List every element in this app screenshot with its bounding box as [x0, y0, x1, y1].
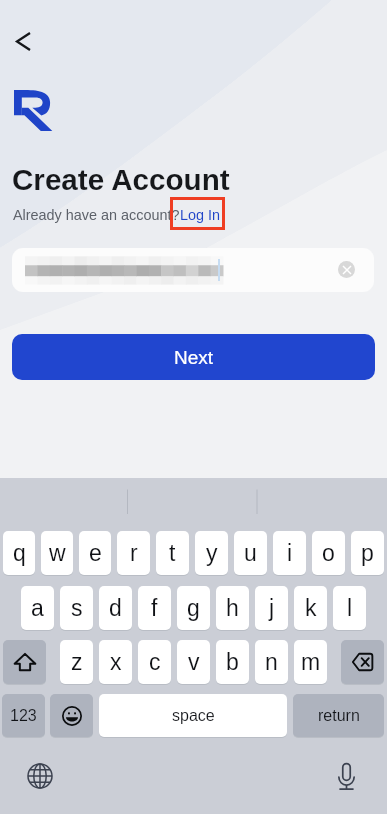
staticText: m	[301, 649, 321, 675]
button[interactable]: n	[255, 640, 288, 684]
button[interactable]: b	[216, 640, 249, 684]
staticText: Next	[174, 347, 214, 368]
staticText: l	[347, 595, 353, 621]
staticText: y	[206, 540, 218, 566]
staticText: x	[110, 649, 122, 675]
button[interactable]: x	[99, 640, 132, 684]
staticText: 123	[10, 707, 37, 725]
button[interactable]: o	[312, 531, 345, 575]
button[interactable]: Clear text	[12, 248, 374, 292]
staticText: Already have an account?	[13, 207, 180, 223]
staticText: s	[71, 595, 83, 621]
button[interactable]: q	[3, 531, 35, 575]
staticText: u	[244, 540, 257, 566]
button[interactable]: w	[41, 531, 73, 575]
staticText: w	[49, 540, 66, 566]
button[interactable]: Clear text	[338, 261, 355, 278]
button[interactable]: i	[273, 531, 306, 575]
staticText: c	[149, 649, 161, 675]
staticText: k	[305, 595, 317, 621]
button[interactable]: d	[99, 586, 132, 630]
staticText: j	[269, 595, 275, 621]
button[interactable]: Log In	[180, 207, 221, 223]
staticText: i	[287, 540, 293, 566]
button[interactable]: z	[60, 640, 93, 684]
staticText: o	[322, 540, 335, 566]
staticText: r	[130, 540, 138, 566]
button[interactable]: Return	[293, 694, 384, 737]
button[interactable]: Emoji	[50, 694, 93, 737]
button[interactable]: Numbers	[2, 694, 45, 737]
button[interactable]: space	[99, 694, 287, 737]
button[interactable]: y	[195, 531, 228, 575]
staticText: p	[361, 540, 374, 566]
button[interactable]: Next	[12, 334, 375, 380]
button[interactable]: Dictate	[329, 759, 363, 793]
button[interactable]: u	[234, 531, 267, 575]
button[interactable]: Change keyboard	[23, 759, 57, 793]
staticText: f	[151, 595, 158, 621]
button[interactable]: k	[294, 586, 327, 630]
staticText: q	[13, 540, 26, 566]
staticText: a	[31, 595, 44, 621]
button[interactable]: h	[216, 586, 249, 630]
staticText: space	[172, 707, 215, 725]
staticText: return	[318, 707, 360, 725]
staticText: v	[188, 649, 200, 675]
button[interactable]: f	[138, 586, 171, 630]
button[interactable]: l	[333, 586, 366, 630]
button[interactable]: g	[177, 586, 210, 630]
button[interactable]: v	[177, 640, 210, 684]
staticText: h	[226, 595, 239, 621]
staticText: Create Account	[12, 163, 230, 196]
button[interactable]: c	[138, 640, 171, 684]
staticText: z	[71, 649, 83, 675]
button[interactable]: p	[351, 531, 384, 575]
staticText: b	[226, 649, 239, 675]
staticText: n	[265, 649, 278, 675]
staticText: Log In	[180, 207, 221, 223]
button[interactable]: e	[79, 531, 111, 575]
button[interactable]: m	[294, 640, 327, 684]
staticText: e	[89, 540, 102, 566]
staticText: d	[109, 595, 122, 621]
button[interactable]: r	[117, 531, 150, 575]
button[interactable]: s	[60, 586, 93, 630]
button[interactable]: a	[21, 586, 54, 630]
staticText: g	[187, 595, 200, 621]
button[interactable]: Back	[5, 23, 41, 59]
staticText: t	[169, 540, 176, 566]
button[interactable]: j	[255, 586, 288, 630]
button[interactable]: t	[156, 531, 189, 575]
button[interactable]: Shift	[3, 640, 46, 684]
button[interactable]: Backspace	[341, 640, 384, 684]
